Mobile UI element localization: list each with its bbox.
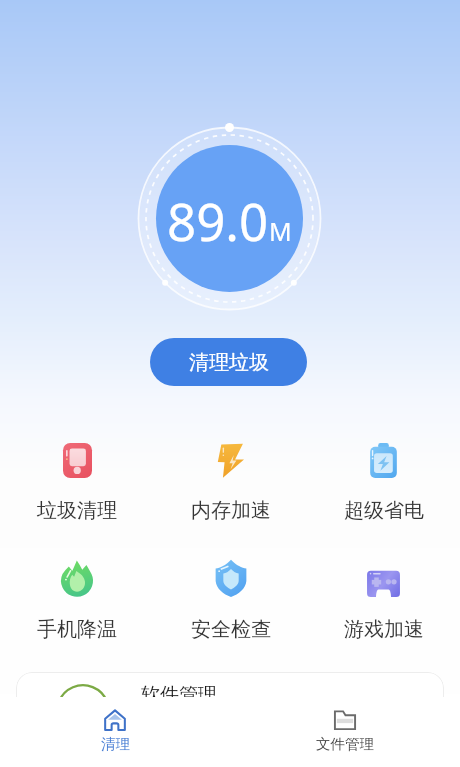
staticText: 清理垃圾 (189, 350, 269, 375)
staticText: 手机降温 (37, 617, 117, 642)
button[interactable]: 手机降温 (0, 558, 154, 642)
button[interactable]: 清理 (0, 697, 230, 753)
staticText: 软件管理 (141, 683, 217, 707)
button[interactable]: 超级省电 (307, 439, 460, 523)
button[interactable]: 安全检查 (154, 558, 307, 642)
button[interactable]: 内存加速 (154, 439, 307, 523)
staticText: 89.0 (167, 186, 269, 255)
staticText: 清理 (101, 735, 130, 753)
button[interactable]: 游戏加速 (307, 558, 460, 642)
button[interactable]: 文件管理 (230, 697, 460, 753)
staticText: 超级省电 (344, 498, 424, 523)
button[interactable]: 软件管理 (16, 672, 444, 732)
staticText: 游戏加速 (344, 617, 424, 642)
staticText: M (269, 214, 292, 248)
button[interactable]: 垃圾清理 (0, 439, 154, 523)
staticText: 安全检查 (191, 617, 271, 642)
button[interactable]: 清理垃圾 (150, 338, 307, 386)
staticText: 内存加速 (191, 498, 271, 523)
staticText: 文件管理 (316, 735, 374, 753)
staticText: 垃圾清理 (37, 498, 117, 523)
